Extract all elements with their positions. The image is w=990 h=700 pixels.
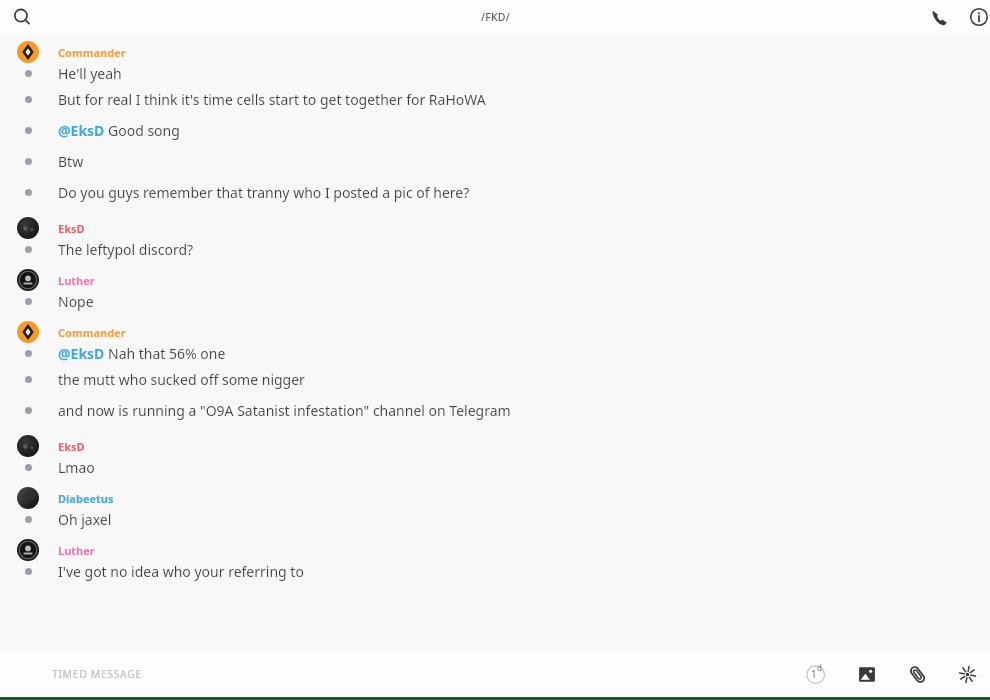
- button[interactable]: Oh jaxel: [0, 509, 990, 530]
- button[interactable]: TIMED MESSAGE: [52, 654, 452, 694]
- button[interactable]: Do you guys remember that tranny who I p…: [0, 177, 990, 208]
- staticText: Nope: [58, 292, 94, 311]
- staticText: EksD: [58, 439, 85, 454]
- button[interactable]: Call: [922, 0, 956, 34]
- staticText: EksD: [58, 221, 85, 236]
- button[interactable]: the mutt who sucked off some nigger: [0, 364, 990, 395]
- button[interactable]: The leftypol discord?: [0, 239, 990, 260]
- button[interactable]: @EksD Nah that 56% one: [0, 343, 990, 364]
- button[interactable]: But for real I think it's time cells sta…: [0, 84, 990, 115]
- staticText: Btw: [58, 152, 84, 171]
- staticText: Do you guys remember that tranny who I p…: [58, 183, 470, 202]
- button[interactable]: Message timer: [800, 657, 834, 691]
- staticText: d: [817, 662, 822, 673]
- button[interactable]: Commander: [0, 321, 990, 435]
- staticText: the mutt who sucked off some nigger: [58, 370, 305, 389]
- button[interactable]: Luther: [0, 539, 990, 591]
- button[interactable]: EksD: [0, 217, 990, 269]
- staticText: Commander: [58, 325, 126, 340]
- button[interactable]: and now is running a "O9A Satanist infes…: [0, 395, 990, 426]
- button[interactable]: Lmao: [0, 457, 990, 478]
- button[interactable]: Nope: [0, 291, 990, 312]
- staticText: and now is running a "O9A Satanist infes…: [58, 401, 511, 420]
- button[interactable]: EksD: [0, 435, 990, 487]
- button[interactable]: I've got no idea who your referring to: [0, 561, 990, 582]
- staticText: Luther: [58, 273, 95, 288]
- staticText: @EksD Good song: [58, 121, 180, 140]
- button[interactable]: He'll yeah: [0, 63, 990, 84]
- staticText: Oh jaxel: [58, 510, 112, 529]
- button[interactable]: Diabeetus: [0, 487, 990, 539]
- staticText: I've got no idea who your referring to: [58, 562, 304, 581]
- button[interactable]: Commander: [0, 41, 990, 217]
- staticText: Luther: [58, 543, 95, 558]
- staticText: Diabeetus: [58, 491, 114, 506]
- staticText: Commander: [58, 45, 126, 60]
- staticText: /FKD/: [481, 10, 510, 24]
- button[interactable]: Info: [962, 0, 990, 34]
- staticText: TIMED MESSAGE: [52, 667, 142, 681]
- button[interactable]: Luther: [0, 269, 990, 321]
- button[interactable]: Search: [6, 1, 38, 33]
- button[interactable]: Attach file: [900, 657, 934, 691]
- staticText: @EksD Nah that 56% one: [58, 344, 226, 363]
- staticText: 1: [811, 667, 817, 681]
- staticText: The leftypol discord?: [58, 240, 194, 259]
- staticText: He'll yeah: [58, 64, 122, 83]
- button[interactable]: @EksD Good song: [0, 115, 990, 146]
- button[interactable]: Effects: [950, 657, 984, 691]
- button[interactable]: Send photo: [850, 657, 884, 691]
- button[interactable]: Btw: [0, 146, 990, 177]
- staticText: Lmao: [58, 458, 95, 477]
- staticText: But for real I think it's time cells sta…: [58, 90, 486, 109]
